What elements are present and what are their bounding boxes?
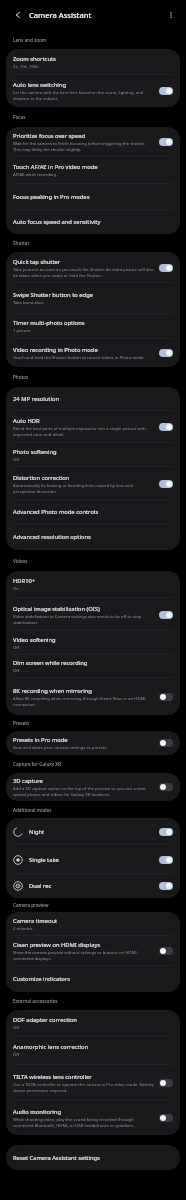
staticText: Camera timeout (13, 917, 58, 925)
button[interactable]: On (159, 423, 173, 431)
staticText: Take pictures as soon as you touch the S… (13, 267, 154, 278)
button[interactable]: Zoom shortcuts (6, 49, 180, 75)
button[interactable]: Anamorphic lens correction (6, 1036, 180, 1065)
button[interactable]: On (159, 856, 173, 864)
button[interactable]: Auto focus speed and sensitivity (6, 210, 180, 234)
button[interactable]: Optical image stabilization (OIS) (6, 598, 180, 631)
staticText: Presets (13, 720, 30, 726)
staticText: Camera preview (13, 902, 49, 908)
button[interactable]: Off (159, 947, 173, 955)
staticText: Off (13, 1052, 20, 1058)
staticText: External accessories (13, 998, 58, 1004)
staticText: Zoom shortcuts (13, 55, 56, 63)
button[interactable]: Timer multi-photo options (6, 314, 180, 339)
staticText: Auto HDR (13, 417, 40, 425)
staticText: Blend the best parts of multiple exposur… (13, 426, 154, 437)
button[interactable]: Night (6, 818, 180, 845)
staticText: Optical image stabilization (OIS) (13, 605, 100, 613)
button[interactable]: Off (159, 1114, 173, 1122)
button[interactable]: 3D capture (6, 773, 180, 801)
button[interactable]: On (159, 87, 173, 95)
button[interactable]: Video recording in Photo mode (6, 339, 180, 367)
button[interactable]: Reset Camera Assistant settings (6, 1145, 180, 1170)
staticText: Swipe Shutter button to edge (13, 291, 93, 299)
button[interactable]: DOF adapter correction (6, 1010, 180, 1036)
staticText: Automatically fix bowing or bending line… (13, 483, 154, 494)
staticText: Photo softening (13, 448, 57, 456)
staticText: Quick tap shutter (13, 258, 61, 266)
button[interactable]: Auto HDR (6, 411, 180, 443)
button[interactable]: Off (159, 1079, 173, 1087)
staticText: Video stabilization in Camera settings a… (13, 614, 154, 625)
staticText: Audio monitoring (13, 1108, 62, 1116)
button[interactable]: Off (159, 739, 173, 747)
staticText: Use a TILTA controller to operate the ca… (13, 1082, 154, 1093)
staticText: Auto focus speed and sensitivity (13, 218, 101, 226)
button[interactable]: TILTA wireless lens controller (6, 1065, 180, 1100)
button[interactable]: On (159, 828, 173, 836)
staticText: Presets in Pro mode (13, 736, 68, 744)
staticText: 8K recording when mirroring (13, 687, 92, 695)
button[interactable]: 24 MP resolution (6, 387, 180, 411)
staticText: Capture for Galaxy XR (13, 761, 61, 767)
staticText: DOF adapter correction (13, 1016, 77, 1024)
button[interactable]: Off (159, 693, 173, 701)
button[interactable]: Photo softening (6, 443, 180, 467)
staticText: Add a 3D capture option to the top of th… (13, 786, 154, 797)
button[interactable]: Customize indicators (6, 966, 180, 992)
button[interactable]: Presets in Pro mode (6, 731, 180, 755)
button[interactable]: 8K recording when mirroring (6, 678, 180, 715)
staticText: HDR10+ (13, 577, 36, 585)
staticText: Focus (13, 114, 26, 120)
button[interactable]: Dual rec (6, 874, 180, 898)
staticText: Off (13, 1025, 20, 1031)
button[interactable]: On (159, 349, 173, 357)
staticText: Advanced resolution options (13, 533, 91, 541)
button[interactable]: On (159, 138, 173, 146)
button[interactable]: Quick tap shutter (6, 252, 180, 283)
staticText: Off (13, 457, 20, 463)
staticText: 3D capture (13, 777, 43, 785)
button[interactable]: HDR10+ (6, 571, 180, 598)
staticText: AF/AE while recording (13, 172, 57, 178)
staticText: Clean preview on HDMI displays (13, 941, 101, 949)
button[interactable]: Single take (6, 845, 180, 874)
staticText: 1 picture (13, 328, 31, 334)
button[interactable]: On (159, 882, 173, 890)
button[interactable]: More options (164, 8, 178, 22)
staticText: Auto lens switching (13, 81, 66, 89)
button[interactable]: Advanced resolution options (6, 524, 180, 550)
staticText: Single take (29, 856, 159, 864)
button[interactable]: Swipe Shutter button to edge (6, 283, 180, 314)
staticText: Save and share your camera settings as p… (13, 745, 108, 751)
button[interactable]: Video softening (6, 631, 180, 655)
button[interactable]: Audio monitoring (6, 1100, 180, 1135)
button[interactable]: On (159, 264, 173, 272)
button[interactable]: Clean preview on HDMI displays (6, 936, 180, 966)
button[interactable]: Prioritize focus over speed (6, 127, 180, 156)
staticText: Distortion correction (13, 474, 70, 482)
staticText: Prioritize focus over speed (13, 132, 85, 140)
button[interactable]: Auto lens switching (6, 75, 180, 107)
button[interactable]: Off (159, 783, 173, 791)
button[interactable]: Camera timeout (6, 912, 180, 936)
staticText: Allow 8K recording when mirroring throug… (13, 696, 154, 707)
staticText: While shooting video, play the sound bei… (13, 1117, 154, 1128)
button[interactable]: Dim screen while recording (6, 655, 180, 678)
staticText: Show the camera preview without settings… (13, 950, 154, 961)
staticText: Let the camera pick the best lens based … (13, 90, 154, 101)
staticText: Video softening (13, 636, 56, 644)
staticText: Take burst shot (13, 300, 44, 306)
button[interactable]: Distortion correction (6, 467, 180, 500)
button[interactable]: On (159, 611, 173, 619)
staticText: 24 MP resolution (13, 395, 59, 403)
button[interactable]: Navigate up (11, 8, 25, 22)
staticText: Anamorphic lens correction (13, 1043, 89, 1051)
staticText: Advanced Photo mode controls (13, 508, 99, 516)
staticText: Night (29, 828, 159, 836)
button[interactable]: Touch AF/AE in Pro video mode (6, 156, 180, 184)
button[interactable]: Advanced Photo mode controls (6, 500, 180, 524)
button[interactable]: On (159, 480, 173, 488)
staticText: On (13, 586, 19, 592)
button[interactable]: Focus peaking in Pro modes (6, 184, 180, 210)
